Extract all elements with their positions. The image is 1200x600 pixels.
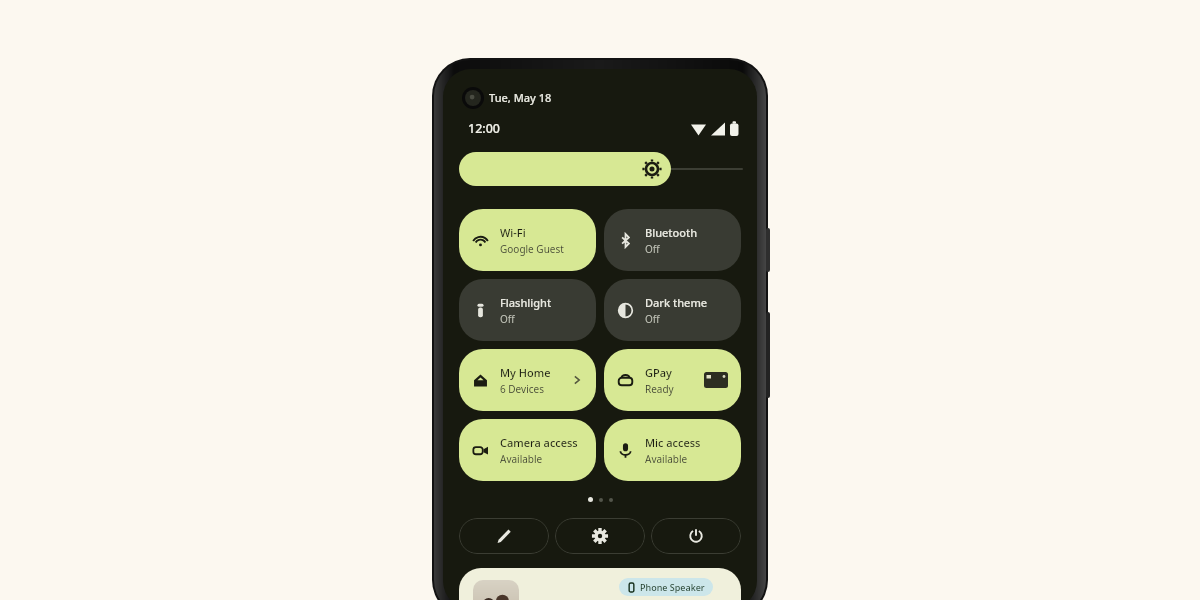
button[interactable]: Wi-Fi: [459, 209, 596, 271]
button[interactable]: Flashlight: [459, 279, 596, 341]
button[interactable]: My Home: [459, 349, 596, 411]
button[interactable]: Edit: [459, 518, 549, 554]
staticText: Tue, May 18: [489, 90, 552, 105]
button[interactable]: Phone Speaker: [619, 578, 713, 596]
button[interactable]: Phone Speaker: [459, 568, 741, 600]
staticText: Off: [645, 312, 660, 326]
button[interactable]: Power: [651, 518, 741, 554]
staticText: Flashlight: [500, 295, 552, 310]
button[interactable]: Settings: [555, 518, 645, 554]
staticText: Wi-Fi: [500, 225, 526, 240]
button[interactable]: [459, 152, 671, 186]
button[interactable]: Mic access: [604, 419, 741, 481]
button[interactable]: Camera access: [459, 419, 596, 481]
staticText: Bluetooth: [645, 225, 698, 240]
staticText: Dark theme: [645, 295, 708, 310]
button[interactable]: Dark theme: [604, 279, 741, 341]
staticText: Phone Speaker: [640, 581, 705, 593]
staticText: Mic access: [645, 435, 701, 450]
staticText: Off: [500, 312, 515, 326]
staticText: 12:00: [468, 120, 501, 137]
button[interactable]: GPay: [604, 349, 741, 411]
staticText: Camera access: [500, 435, 578, 450]
staticText: 6 Devices: [500, 382, 544, 396]
staticText: Ready: [645, 382, 674, 396]
staticText: My Home: [500, 365, 551, 380]
staticText: Off: [645, 242, 660, 256]
staticText: Available: [645, 452, 688, 466]
button[interactable]: Bluetooth: [604, 209, 741, 271]
staticText: Google Guest: [500, 242, 564, 256]
staticText: GPay: [645, 365, 672, 380]
staticText: Available: [500, 452, 543, 466]
